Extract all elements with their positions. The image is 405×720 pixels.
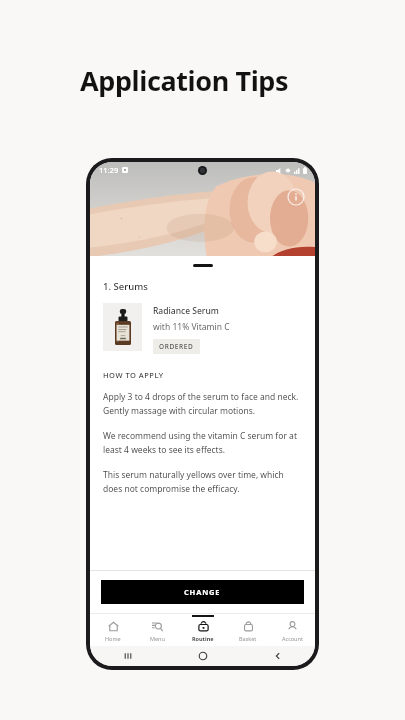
- button[interactable]: Information: [287, 188, 305, 206]
- staticText: Account: [282, 635, 303, 642]
- button[interactable]: Home: [90, 614, 135, 646]
- staticText: ORDERED: [159, 342, 194, 351]
- button[interactable]: Basket: [225, 614, 270, 646]
- staticText: 11:29: [99, 165, 119, 175]
- staticText: This serum naturally yellows over time, …: [103, 469, 302, 494]
- staticText: Radiance Serum: [153, 305, 219, 317]
- staticText: Apply 3 to 4 drops of the serum to face …: [103, 391, 302, 416]
- button[interactable]: Account: [270, 614, 315, 646]
- button[interactable]: Menu: [135, 614, 180, 646]
- staticText: Basket: [239, 635, 257, 642]
- staticText: We recommend using the vitamin C serum f…: [103, 430, 302, 455]
- button[interactable]: Radiance Serum: [103, 303, 302, 354]
- staticText: CHANGE: [184, 587, 221, 597]
- button[interactable]: ORDERED: [153, 339, 200, 354]
- staticText: Menu: [150, 635, 165, 642]
- staticText: Application Tips: [80, 62, 289, 99]
- staticText: Routine: [192, 635, 214, 642]
- button[interactable]: Routine: [180, 614, 225, 646]
- button[interactable]: CHANGE: [101, 580, 304, 604]
- staticText: HOW TO APPLY: [103, 370, 164, 380]
- staticText: with 11% Vitamin C: [153, 321, 230, 333]
- staticText: 1. Serums: [103, 280, 148, 293]
- staticText: Home: [105, 635, 121, 642]
